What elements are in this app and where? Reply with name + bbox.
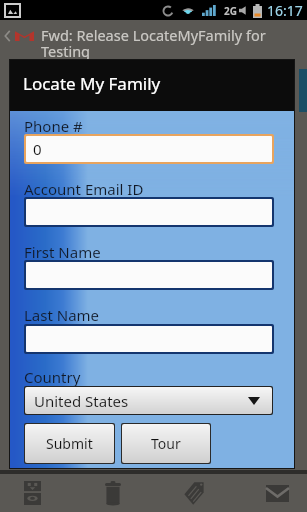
button[interactable]: Archive <box>0 474 70 512</box>
staticText: 2G <box>224 4 237 18</box>
staticText: United States <box>34 391 129 411</box>
button[interactable]: Tour <box>122 424 210 463</box>
button[interactable]: Submit <box>25 424 114 463</box>
staticText: Account Email ID <box>24 179 144 199</box>
staticText: 0 <box>33 139 42 159</box>
staticText: Country <box>24 367 81 387</box>
staticText: Tour <box>151 434 181 453</box>
staticText: 16:17 <box>267 1 303 20</box>
staticText: Phone # <box>24 116 83 136</box>
button[interactable]: 0 <box>26 136 272 162</box>
staticText: Fwd: Release LocateMyFamily for Testing <box>41 25 289 61</box>
button[interactable]: Mark unread <box>239 474 307 512</box>
staticText: First Name <box>24 242 101 262</box>
staticText: Last Name <box>24 305 100 325</box>
button[interactable]: United States <box>25 387 272 414</box>
staticText: Submit <box>46 434 93 453</box>
button[interactable]: Delete <box>75 474 151 512</box>
button[interactable]: Label <box>156 474 232 512</box>
staticText: Locate My Family <box>23 72 161 95</box>
